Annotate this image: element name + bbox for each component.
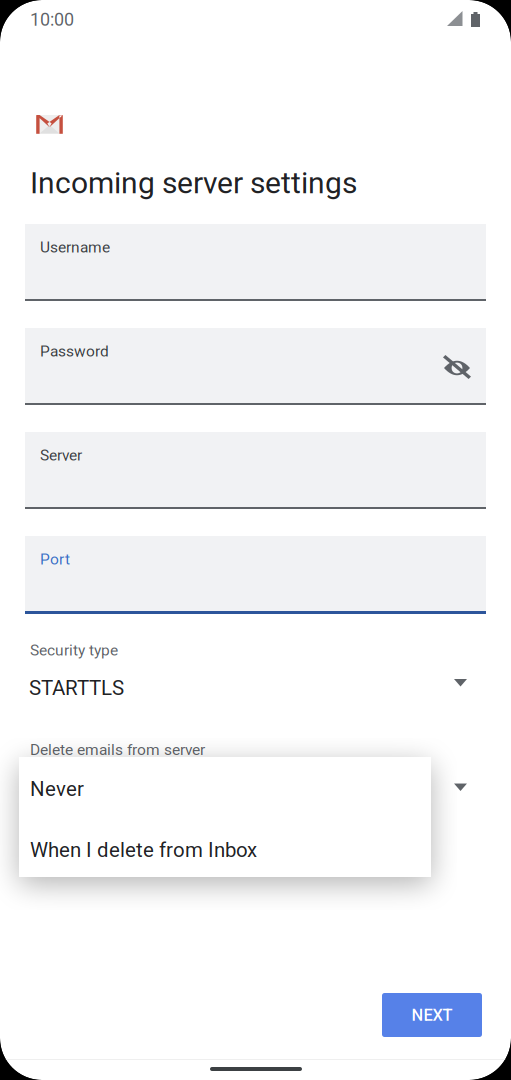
staticText: STARTTLS [29,676,124,700]
staticText: Username [40,238,110,256]
staticText: Port [40,550,70,568]
button[interactable]: When I delete from Inbox [19,817,431,877]
button[interactable]: Password [25,328,486,405]
button[interactable]: Server [25,432,486,509]
staticText: NEXT [411,1005,452,1025]
staticText: When I delete from Inbox [30,838,257,862]
button[interactable]: Never [19,757,431,817]
button[interactable]: Username [25,224,486,301]
staticText: Incoming server settings [30,165,357,201]
staticText: 10:00 [30,9,74,30]
staticText: Security type [30,641,118,659]
button[interactable]: Security type [25,641,486,703]
button[interactable]: NEXT [382,993,482,1037]
button[interactable]: Port [25,536,486,614]
staticText: Delete emails from server [30,740,205,759]
button[interactable]: Delete emails from server [25,738,486,800]
staticText: Never [30,777,84,801]
staticText: Password [40,342,109,360]
staticText: Server [40,446,82,464]
